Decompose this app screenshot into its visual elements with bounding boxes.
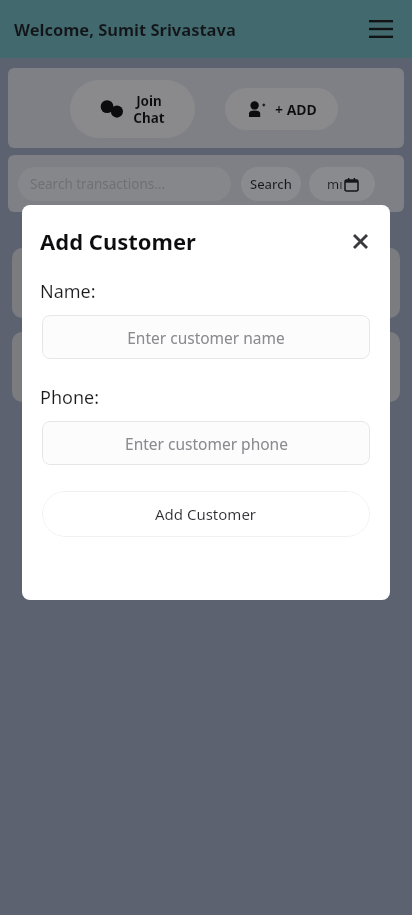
button[interactable]: Join Chat xyxy=(70,80,195,138)
staticText: Add Customer xyxy=(155,504,257,524)
staticText: Enter customer phone xyxy=(125,433,288,454)
button[interactable]: Add Customer xyxy=(42,491,370,537)
staticText: Join Chat xyxy=(133,92,165,127)
button[interactable]: mı xyxy=(309,167,375,201)
button[interactable]: Close xyxy=(344,225,376,257)
staticText: Enter customer name xyxy=(127,327,285,348)
staticText: Name: xyxy=(40,279,96,304)
staticText: Welcome, Sumit Srivastava xyxy=(14,18,236,40)
button[interactable]: Search transactions... xyxy=(18,167,231,201)
staticText: mı xyxy=(327,175,343,193)
staticText: Add Customer xyxy=(40,226,196,256)
button[interactable]: Search xyxy=(241,167,301,201)
staticText: Search transactions... xyxy=(30,175,166,193)
button[interactable]: Menu xyxy=(364,12,398,46)
button[interactable]: Enter customer phone xyxy=(42,421,370,465)
staticText: Phone: xyxy=(40,385,100,410)
staticText: + ADD xyxy=(275,100,317,119)
button[interactable]: Enter customer name xyxy=(42,315,370,359)
button[interactable]: + ADD xyxy=(225,88,338,130)
staticText: Search xyxy=(250,175,292,193)
